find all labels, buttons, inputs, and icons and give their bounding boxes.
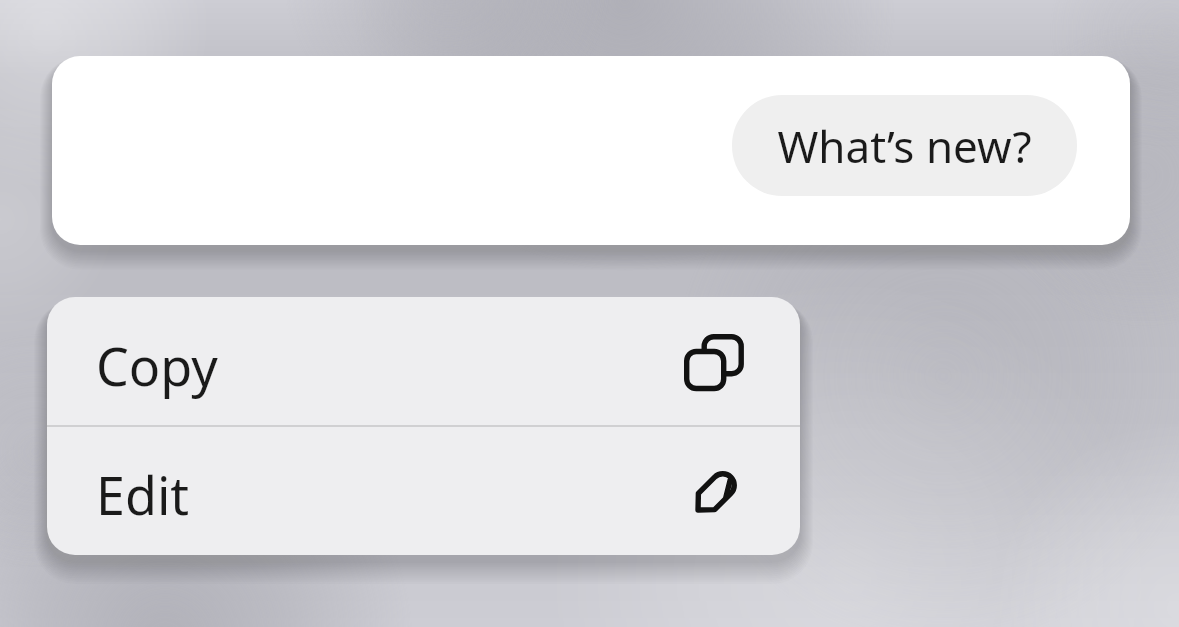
staticText: Copy: [96, 330, 218, 401]
button[interactable]: Copy: [47, 297, 800, 425]
button[interactable]: Edit: [47, 427, 800, 555]
staticText: Edit: [96, 459, 190, 530]
staticText: What’s new?: [777, 116, 1032, 176]
button[interactable]: What’s new?: [732, 95, 1077, 196]
